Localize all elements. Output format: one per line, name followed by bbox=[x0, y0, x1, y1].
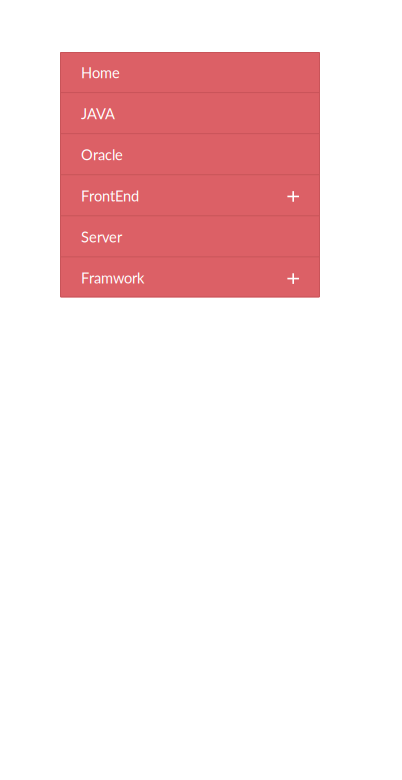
button[interactable]: Oracle bbox=[60, 134, 320, 174]
staticText: Server bbox=[81, 228, 122, 246]
button[interactable]: Framwork bbox=[60, 257, 320, 297]
button[interactable]: FrontEnd bbox=[60, 175, 320, 215]
staticText: Home bbox=[81, 64, 120, 81]
button[interactable]: JAVA bbox=[60, 93, 320, 133]
staticText: JAVA bbox=[81, 105, 115, 122]
button[interactable]: Server bbox=[60, 216, 320, 256]
staticText: FrontEnd bbox=[81, 187, 139, 204]
staticText: Oracle bbox=[81, 146, 123, 163]
staticText: Framwork bbox=[81, 269, 144, 287]
button[interactable]: Home bbox=[60, 52, 320, 92]
